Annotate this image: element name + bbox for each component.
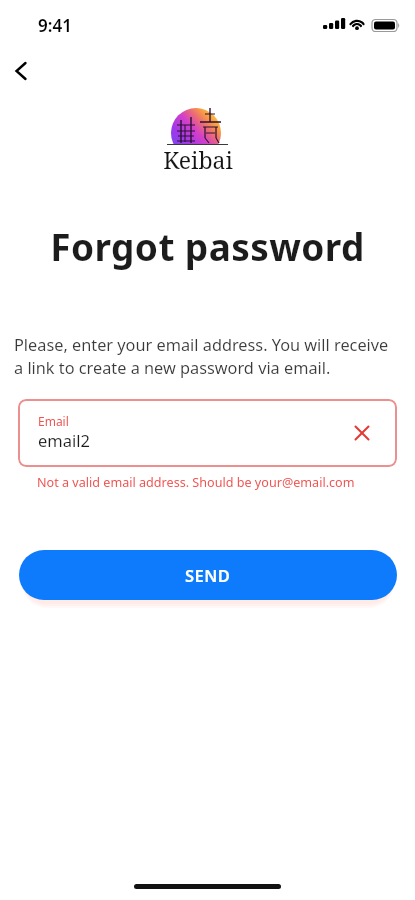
staticText: email2 <box>38 429 90 451</box>
staticText: SEND <box>185 564 231 586</box>
staticText: Email <box>38 413 69 429</box>
staticText: Forgot password <box>0 221 415 271</box>
button[interactable] <box>1 55 41 87</box>
staticText: Keibai <box>0 144 396 175</box>
staticText: Not a valid email address. Should be you… <box>37 474 355 491</box>
staticText: 9:41 <box>38 14 72 37</box>
button[interactable]: SEND <box>19 550 397 600</box>
staticText: Please, enter your email address. You wi… <box>14 334 389 378</box>
button[interactable]: Email <box>18 399 397 467</box>
